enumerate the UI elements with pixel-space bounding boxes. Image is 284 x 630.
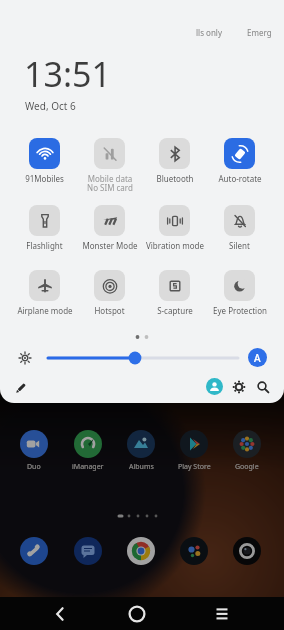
staticText: Airplane mode	[17, 305, 73, 316]
button[interactable]: A	[248, 348, 267, 367]
staticText: Eye Protection	[213, 305, 267, 316]
staticText: Play Store	[178, 462, 211, 472]
button[interactable]	[231, 379, 247, 395]
button[interactable]	[180, 430, 208, 458]
staticText: iManager	[72, 462, 104, 472]
staticText: Emerg	[247, 27, 272, 38]
button[interactable]	[208, 597, 236, 630]
button[interactable]	[46, 597, 74, 630]
staticText: Flashlight	[26, 240, 63, 251]
button[interactable]	[224, 138, 255, 169]
staticText: Vibration mode	[146, 240, 204, 251]
button[interactable]	[233, 430, 261, 458]
button[interactable]	[159, 138, 190, 169]
staticText: A	[254, 351, 261, 365]
button[interactable]	[180, 537, 208, 565]
staticText: 91Mobiles	[25, 173, 64, 184]
button[interactable]	[8, 376, 32, 400]
button[interactable]	[233, 537, 261, 565]
button[interactable]	[159, 270, 190, 301]
staticText: Hotspot	[94, 305, 125, 316]
staticText: Bluetooth	[156, 173, 194, 184]
button[interactable]	[94, 270, 125, 301]
staticText: Albums	[129, 462, 154, 472]
button[interactable]	[224, 270, 255, 301]
button[interactable]	[29, 270, 60, 301]
button[interactable]	[20, 537, 48, 565]
button[interactable]	[74, 537, 102, 565]
button[interactable]	[94, 138, 125, 169]
button[interactable]	[74, 430, 102, 458]
button[interactable]	[127, 430, 155, 458]
button[interactable]	[29, 138, 60, 169]
staticText: S-capture	[157, 305, 193, 316]
button[interactable]	[20, 430, 48, 458]
button[interactable]	[159, 205, 190, 236]
staticText: Silent	[229, 240, 250, 251]
button[interactable]	[127, 537, 155, 565]
staticText: Wed, Oct 6	[25, 99, 76, 113]
button[interactable]	[224, 205, 255, 236]
staticText: lls only	[196, 27, 222, 38]
button[interactable]	[206, 378, 223, 395]
staticText: 13:51	[24, 51, 111, 97]
staticText: Duo	[27, 462, 41, 472]
button[interactable]	[123, 597, 151, 630]
button[interactable]	[94, 205, 125, 236]
staticText: Google	[235, 462, 259, 472]
staticText: Auto-rotate	[218, 173, 262, 184]
staticText: Monster Mode	[82, 240, 138, 251]
staticText: Mobile data No SIM card	[87, 173, 133, 194]
button[interactable]	[29, 205, 60, 236]
button[interactable]	[255, 379, 271, 395]
